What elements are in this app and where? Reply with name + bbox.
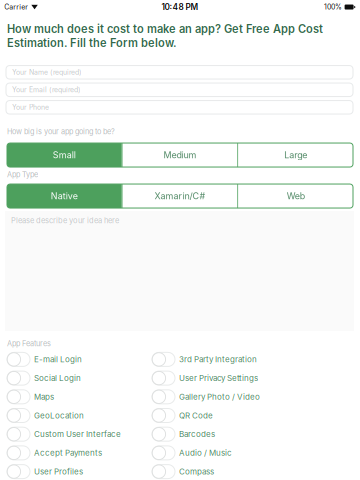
button[interactable]: Accept Payments — [7, 444, 152, 462]
button[interactable]: E-mail Login — [7, 350, 152, 369]
staticText: User Privacy Settings — [179, 373, 258, 383]
staticText: Barcodes — [179, 429, 215, 439]
staticText: 100% — [324, 3, 342, 11]
button[interactable]: GeoLocation — [7, 406, 152, 425]
staticText: User Profiles — [34, 467, 83, 476]
staticText: Carrier — [4, 3, 28, 11]
button[interactable]: Audio / Music — [152, 444, 297, 462]
button[interactable]: Social Login — [7, 369, 152, 387]
staticText: Audio / Music — [179, 448, 232, 458]
staticText: 3rd Party Integration — [179, 355, 257, 364]
button[interactable]: Large — [238, 143, 353, 167]
staticText: App Features — [7, 339, 51, 348]
button[interactable]: QR Code — [152, 406, 297, 425]
button[interactable]: Custom User Interface — [7, 425, 152, 444]
staticText: Xamarin/C# — [154, 191, 205, 201]
staticText: GeoLocation — [34, 411, 84, 420]
button[interactable]: Maps — [7, 387, 152, 406]
staticText: Gallery Photo / Video — [179, 392, 260, 402]
staticText: Social Login — [34, 373, 81, 383]
staticText: 10:48 PM — [161, 2, 198, 12]
staticText: Custom User Interface — [34, 429, 121, 439]
staticText: Maps — [34, 392, 54, 402]
staticText: Medium — [163, 150, 196, 160]
staticText: Your Name (required) — [12, 68, 82, 76]
button[interactable]: Native — [7, 184, 122, 208]
button[interactable]: Xamarin/C# — [123, 184, 237, 208]
staticText: Please describe your idea here — [11, 216, 119, 225]
button[interactable]: Medium — [123, 143, 237, 167]
button[interactable]: User Privacy Settings — [152, 369, 297, 387]
button[interactable]: Web — [238, 184, 353, 208]
button[interactable]: Compass — [152, 462, 297, 480]
staticText: QR Code — [179, 411, 213, 420]
staticText: Compass — [179, 467, 214, 476]
staticText: App Type — [7, 170, 38, 179]
staticText: How big is your app going to be? — [7, 127, 115, 136]
staticText: Small — [53, 150, 76, 160]
button[interactable]: Small — [7, 143, 122, 167]
button[interactable]: User Profiles — [7, 462, 152, 480]
button[interactable]: Your Name (required) — [6, 66, 353, 79]
staticText: E-mail Login — [34, 355, 82, 364]
button[interactable]: Your Email (required) — [6, 83, 353, 97]
button[interactable]: Barcodes — [152, 425, 297, 444]
staticText: Large — [284, 150, 307, 160]
staticText: Accept Payments — [34, 448, 102, 458]
button[interactable]: 3rd Party Integration — [152, 350, 297, 369]
button[interactable]: Gallery Photo / Video — [152, 387, 297, 406]
staticText: Your Email (required) — [12, 86, 81, 94]
staticText: Your Phone — [12, 103, 49, 111]
button[interactable]: Your Phone — [6, 101, 353, 114]
staticText: Native — [51, 191, 78, 201]
staticText: Web — [287, 191, 305, 201]
staticText: How much does it cost to make an app? Ge… — [7, 22, 323, 50]
